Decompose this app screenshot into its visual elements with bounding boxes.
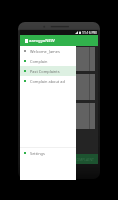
button[interactable] <box>23 103 95 129</box>
button[interactable]: Welcome, James <box>20 46 76 56</box>
staticText: Past Complaints <box>30 69 60 74</box>
staticText: Settings <box>30 151 45 156</box>
button[interactable]: Settings <box>20 148 76 158</box>
button[interactable] <box>23 74 95 100</box>
staticText: 11:16 PM <box>82 30 97 35</box>
button[interactable]: Complain about ad <box>20 76 76 86</box>
staticText: Welcome, James <box>30 49 60 54</box>
staticText: Complain <box>30 59 48 64</box>
button[interactable] <box>23 47 95 71</box>
button[interactable]: Complain <box>20 56 76 66</box>
staticText: aarogyaNEW <box>29 38 55 44</box>
button[interactable]: App logo <box>20 35 98 46</box>
button[interactable]: Past Complaints <box>20 66 76 76</box>
button[interactable]: NEW COMPLAINT <box>20 154 98 164</box>
staticText: NEW COMPLAINT <box>66 157 94 162</box>
staticText: Complain about ad <box>30 79 65 84</box>
